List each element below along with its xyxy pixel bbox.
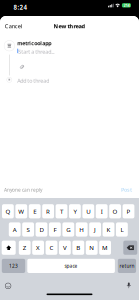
staticText: M (102, 243, 108, 252)
staticText: metricoolapp (17, 40, 51, 47)
button[interactable]: G (62, 222, 74, 237)
button[interactable]: I (96, 204, 108, 218)
staticText: I (101, 207, 103, 215)
button[interactable]: P (123, 204, 134, 218)
staticText: K (106, 225, 110, 234)
staticText: X (36, 243, 40, 252)
button[interactable]: M (99, 241, 111, 255)
button[interactable]: N (86, 241, 98, 255)
staticText: N (89, 243, 94, 252)
button[interactable]: return (118, 259, 136, 273)
button[interactable]: Q (2, 204, 14, 218)
staticText: R (46, 207, 50, 215)
staticText: F (53, 225, 56, 234)
staticText: Cancel (5, 22, 22, 30)
button[interactable]: U (82, 204, 94, 218)
staticText: Q (5, 207, 10, 215)
button[interactable]: 123 (2, 259, 25, 273)
button[interactable]: C (46, 241, 57, 255)
button[interactable]: T (56, 204, 67, 218)
staticText: B (76, 243, 80, 252)
button[interactable]: L (116, 222, 128, 237)
button[interactable]: D (36, 222, 47, 237)
button[interactable]: Emoji keyboard (5, 283, 11, 289)
button[interactable]: W (15, 204, 27, 218)
staticText: O (113, 207, 118, 215)
button[interactable]: Cancel (5, 19, 31, 32)
button[interactable]: V (59, 241, 71, 255)
button[interactable]: Post (121, 185, 132, 194)
button[interactable]: S (22, 222, 34, 237)
button[interactable]: H (76, 222, 88, 237)
staticText: T (60, 207, 63, 215)
button[interactable]: Dictation (126, 282, 131, 289)
staticText: A (13, 225, 17, 234)
staticText: H (79, 225, 84, 234)
staticText: Start a thread... (18, 48, 54, 55)
staticText: Z (23, 243, 27, 252)
staticText: D (39, 225, 43, 234)
staticText: Anyone can reply (4, 187, 42, 193)
staticText: L (120, 225, 123, 234)
staticText: C (49, 243, 53, 252)
staticText: 214 (123, 3, 129, 8)
button[interactable]: R (42, 204, 54, 218)
button[interactable]: B (72, 241, 84, 255)
staticText: Post (121, 186, 132, 193)
button[interactable]: Z (19, 241, 31, 255)
staticText: return (119, 263, 134, 269)
staticText: E (33, 207, 36, 215)
staticText: G (66, 225, 70, 234)
button[interactable]: O (109, 204, 121, 218)
staticText: W (18, 207, 24, 215)
staticText: space (65, 263, 78, 269)
button[interactable]: Backspace (123, 241, 137, 255)
staticText: V (63, 243, 67, 252)
button[interactable]: E (29, 204, 41, 218)
staticText: P (126, 207, 130, 215)
button[interactable]: A (9, 222, 21, 237)
staticText: U (86, 207, 90, 215)
staticText: 8:24 (14, 3, 28, 12)
button[interactable]: J (89, 222, 101, 237)
button[interactable]: Anyone can reply (4, 185, 42, 194)
staticText: Add to thread (17, 77, 49, 84)
staticText: Y (73, 207, 76, 215)
button[interactable]: K (103, 222, 114, 237)
button[interactable]: X (32, 241, 44, 255)
button[interactable]: Y (69, 204, 81, 218)
staticText: S (27, 225, 30, 234)
button[interactable]: F (49, 222, 61, 237)
staticText: 123 (9, 263, 18, 269)
staticText: New thread (53, 22, 85, 30)
staticText: J (94, 225, 96, 234)
button[interactable]: Shift (2, 241, 16, 255)
button[interactable]: space (27, 259, 115, 273)
